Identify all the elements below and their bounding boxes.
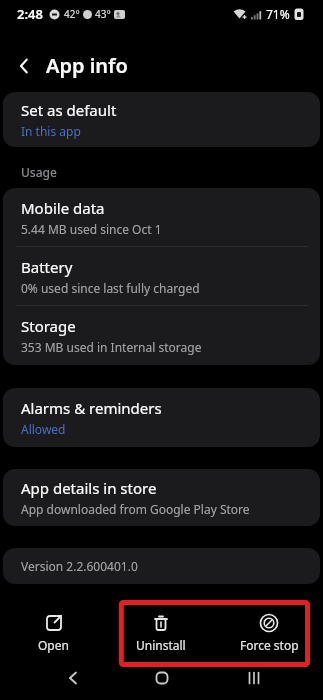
staticText: 353 MB used in Internal storage	[21, 339, 202, 355]
button[interactable]	[247, 671, 261, 685]
staticText: Battery	[21, 257, 73, 277]
staticText: Force stop	[240, 637, 299, 653]
button[interactable]	[155, 671, 169, 685]
staticText: In this app	[21, 123, 81, 139]
button[interactable]: Uninstall	[107, 613, 215, 653]
staticText: 0% used since last fully charged	[21, 280, 200, 296]
button[interactable]: Set as default	[3, 92, 320, 147]
staticText: Usage	[21, 164, 57, 180]
staticText: App downloaded from Google Play Store	[21, 501, 250, 517]
staticText: Alarms & reminders	[21, 398, 162, 418]
staticText: Allowed	[21, 421, 66, 437]
staticText: 71%	[266, 6, 290, 22]
staticText: Mobile data	[21, 198, 105, 218]
button[interactable]: Open	[0, 613, 107, 653]
staticText: Open	[38, 637, 69, 653]
button[interactable]: Battery	[21, 247, 320, 305]
staticText: Uninstall	[136, 637, 186, 653]
staticText: 43°	[95, 7, 111, 21]
staticText: Storage	[21, 316, 76, 336]
staticText: 42°	[64, 7, 80, 21]
button[interactable]	[16, 57, 34, 75]
staticText: App info	[46, 52, 128, 79]
staticText: 2:48	[17, 5, 43, 23]
button[interactable]: Force stop	[215, 613, 323, 653]
staticText: Version 2.2.600401.0	[21, 558, 138, 574]
button[interactable]	[66, 671, 80, 685]
button[interactable]: App details in store	[3, 469, 320, 526]
staticText: 5.44 MB used since Oct 1	[21, 221, 162, 237]
button[interactable]: Version 2.2.600401.0	[3, 548, 320, 584]
staticText: App details in store	[21, 478, 157, 498]
button[interactable]: Storage	[21, 306, 320, 364]
button[interactable]: Alarms & reminders	[3, 388, 320, 447]
button[interactable]: Mobile data	[21, 188, 320, 246]
button[interactable]: Mobile data	[3, 188, 320, 365]
staticText: Set as default	[21, 100, 117, 120]
